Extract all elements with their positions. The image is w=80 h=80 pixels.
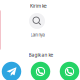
staticText: Lainnya [30,32,44,38]
button[interactable]: WhatsApp [31,62,50,80]
staticText: Kirim ke [30,3,47,9]
button[interactable]: Search [29,13,45,29]
button[interactable]: WhatsApp Business [60,62,79,80]
staticText: Bagikan ke [28,52,53,58]
button[interactable]: Telegram [2,62,21,80]
